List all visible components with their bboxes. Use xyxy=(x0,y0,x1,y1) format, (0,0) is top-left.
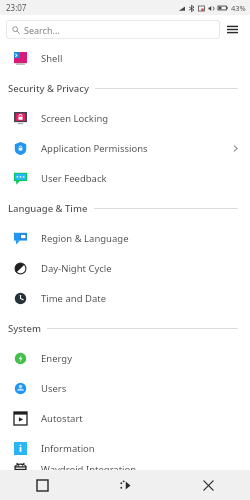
staticText: System xyxy=(8,322,41,335)
button[interactable]: Home xyxy=(0,470,84,500)
staticText: 43% xyxy=(231,3,246,13)
staticText: Region & Language xyxy=(41,232,129,245)
button[interactable]: Back xyxy=(84,470,167,500)
button[interactable]: Shell xyxy=(0,43,250,73)
button[interactable]: Users xyxy=(0,373,250,403)
button[interactable]: Close xyxy=(167,470,250,500)
button[interactable]: Region & Language xyxy=(0,223,250,253)
staticText: Time and Date xyxy=(41,292,107,305)
button[interactable]: Day-Night Cycle xyxy=(0,253,250,283)
button[interactable]: Search... xyxy=(6,20,220,39)
staticText: Users xyxy=(41,382,67,395)
button[interactable]: Application Permissions xyxy=(0,133,250,163)
staticText: Information xyxy=(41,442,95,455)
staticText: Screen Locking xyxy=(41,112,109,125)
staticText: Day-Night Cycle xyxy=(41,262,112,275)
button[interactable]: Menu xyxy=(220,17,244,41)
button[interactable]: Information xyxy=(0,433,250,463)
staticText: User Feedback xyxy=(41,172,107,185)
button[interactable]: Time and Date xyxy=(0,283,250,313)
staticText: Energy xyxy=(41,352,73,365)
staticText: Autostart xyxy=(41,412,83,425)
staticText: Security & Privacy xyxy=(8,82,89,95)
staticText: Language & Time xyxy=(8,202,88,215)
staticText: Shell xyxy=(41,52,63,65)
button[interactable]: Screen Locking xyxy=(0,103,250,133)
button[interactable]: User Feedback xyxy=(0,163,250,193)
button[interactable]: Autostart xyxy=(0,403,250,433)
button[interactable]: Energy xyxy=(0,343,250,373)
staticText: Application Permissions xyxy=(41,142,148,155)
staticText: 23:07 xyxy=(6,2,27,13)
staticText: Waydroid Integration xyxy=(41,463,137,470)
button[interactable]: Waydroid Integration xyxy=(0,463,250,470)
staticText: Search... xyxy=(24,24,60,36)
